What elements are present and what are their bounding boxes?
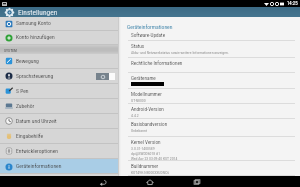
staticText: SYSTEM	[4, 48, 17, 52]
staticText: Datum und Uhrzeit	[16, 118, 57, 125]
staticText: Gerätename	[131, 75, 156, 81]
staticText: Unbekannt	[131, 128, 147, 132]
staticText: Software-Update	[131, 32, 166, 38]
staticText: Geräteinformationen	[127, 24, 173, 31]
staticText: Geräteinformationen	[16, 163, 62, 170]
staticText: Status	[131, 43, 145, 49]
staticText: 3.0.31-1400589	[131, 146, 155, 150]
button[interactable]: Status	[121, 41, 300, 58]
button[interactable]: Basisbandversion	[121, 119, 300, 137]
button[interactable]: Buildnummer	[121, 161, 300, 176]
staticText: Entwickleroptionen	[16, 148, 59, 155]
staticText: Akku- und Netzwerkstatus sowie weitere I…	[131, 50, 229, 54]
button[interactable]: Geräteinformationen	[0, 159, 118, 174]
staticText: Modellnummer	[131, 91, 162, 97]
staticText: Samsung Konto	[16, 20, 51, 27]
button[interactable]: Entwickleroptionen	[0, 144, 118, 158]
staticText: dpi@SWDD6018 #1	[131, 151, 161, 155]
button[interactable]: Sprachsteuerung	[0, 69, 118, 83]
staticText: Eingabehilfe	[16, 133, 44, 140]
staticText: Sprachsteuerung	[16, 73, 54, 80]
staticText: Zubehör	[16, 103, 35, 110]
staticText: Android-Version	[131, 106, 164, 112]
button[interactable]: Home	[141, 176, 159, 187]
button[interactable]: Android-Version	[121, 104, 300, 119]
staticText: 14:25	[287, 1, 298, 7]
button[interactable]: Samsung Konto	[0, 17, 118, 30]
button[interactable]: Modellnummer	[121, 89, 300, 104]
staticText: 4.4.2	[131, 113, 139, 117]
staticText: Buildnummer	[131, 163, 159, 169]
button[interactable]: Back	[94, 176, 112, 187]
staticText: S Pen	[16, 88, 29, 95]
button[interactable]: Konto hinzufügen	[0, 31, 118, 44]
button[interactable]: Datum und Uhrzeit	[0, 114, 118, 128]
button[interactable]: Bewegung	[0, 54, 118, 68]
staticText: Basisbandversion	[131, 121, 168, 127]
staticText: GT-N8000	[131, 98, 146, 102]
button[interactable]: Rechtliche Informationen	[121, 58, 300, 73]
staticText: Konto hinzufügen	[16, 34, 55, 41]
staticText: KOT49H.N8000XXUDNC6	[131, 170, 170, 174]
staticText: Rechtliche Informationen	[131, 60, 183, 66]
staticText: Kernel Version	[131, 139, 161, 145]
button[interactable]: Gerätename	[121, 73, 300, 89]
button[interactable]: Kernel Version	[121, 137, 300, 161]
button[interactable]: Recents	[188, 176, 206, 187]
button[interactable]: Eingabehilfe	[0, 129, 118, 143]
staticText: Wed Apr 23 03:09:40 KST 2014	[131, 156, 178, 160]
staticText: Bewegung	[16, 58, 39, 65]
staticText: Einstellungen	[18, 8, 58, 17]
button[interactable]: Zubehör	[0, 99, 118, 113]
button[interactable]: S Pen	[0, 84, 118, 98]
